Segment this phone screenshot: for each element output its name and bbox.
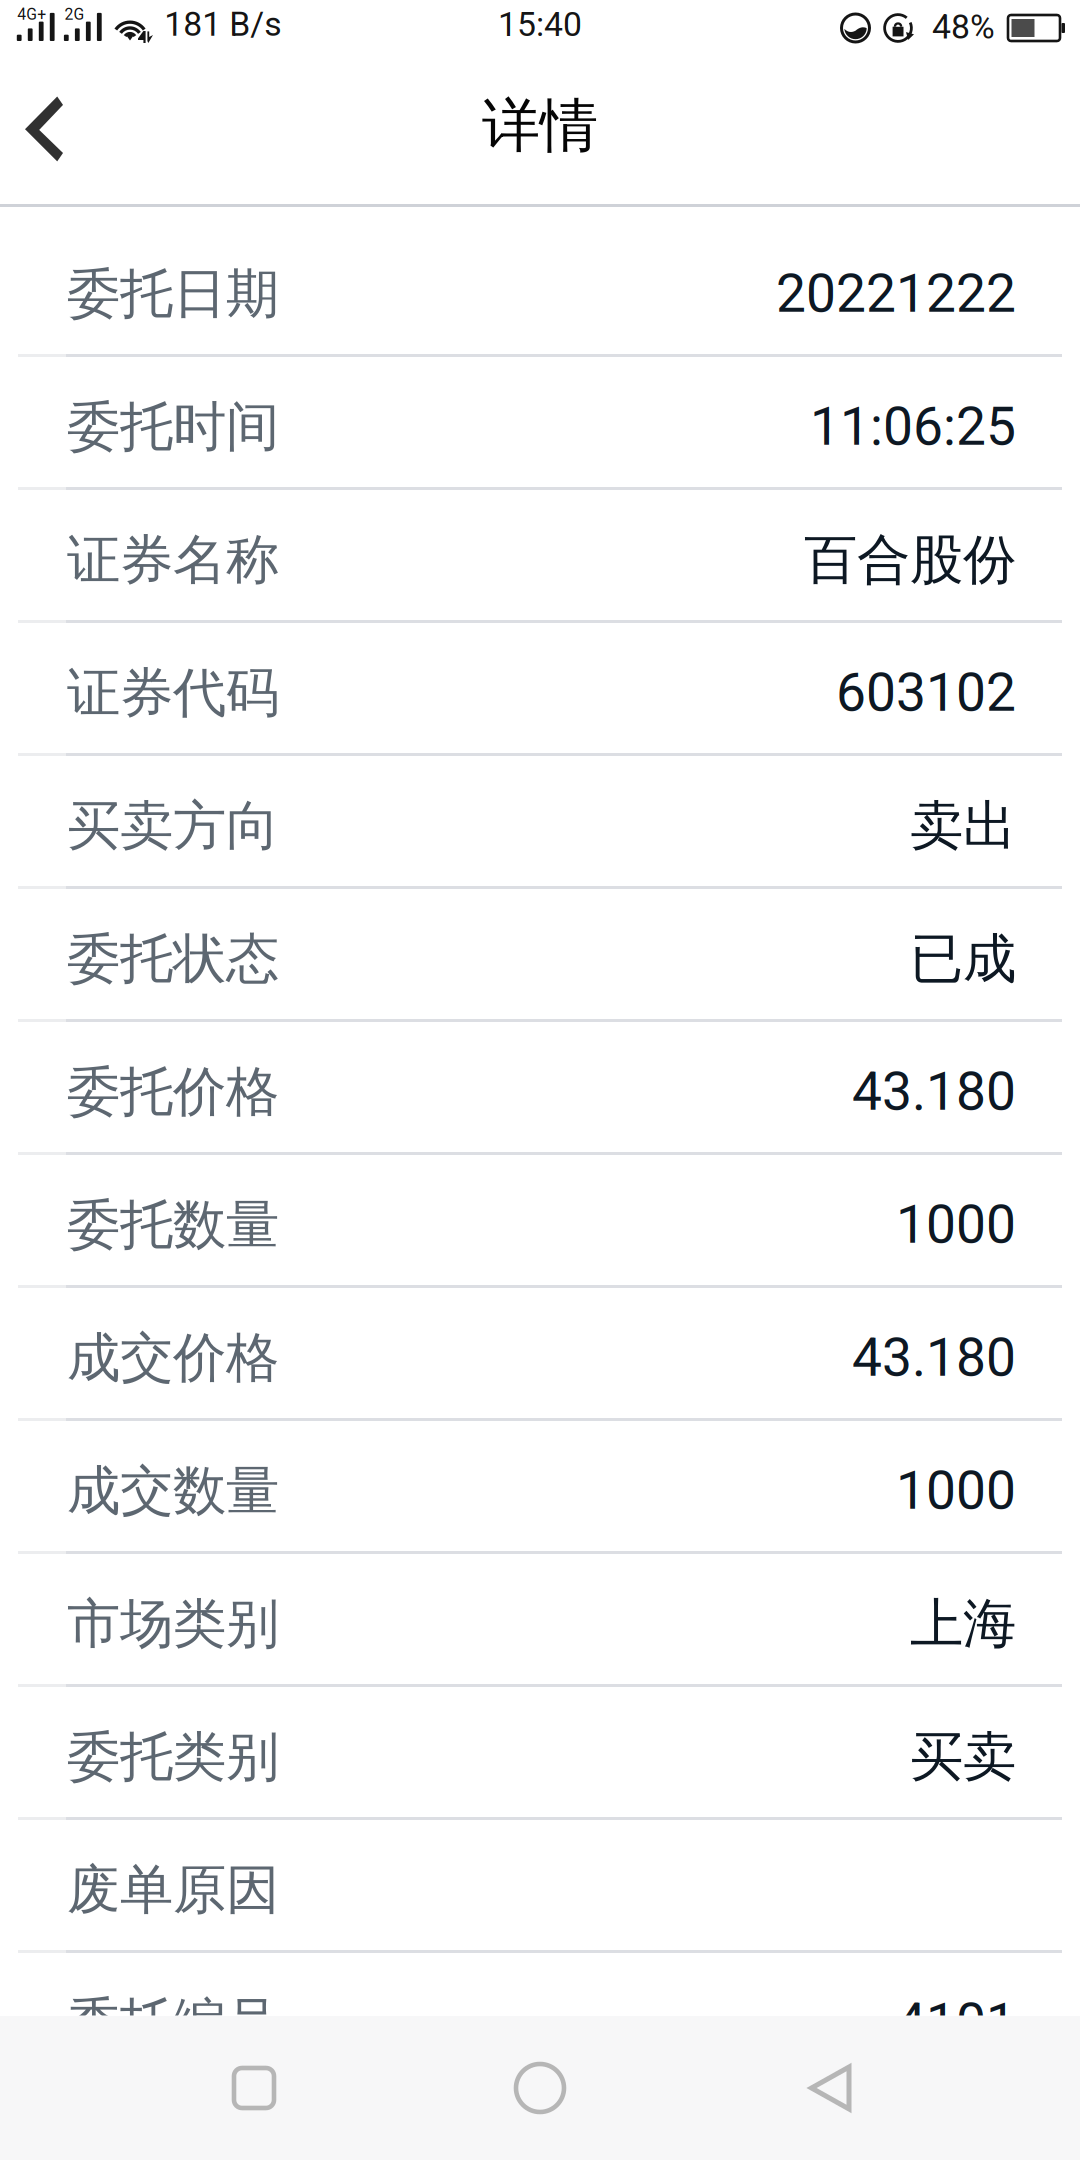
staticText: 委托类别 bbox=[67, 1723, 279, 1791]
button[interactable]: 废单原因 bbox=[0, 1820, 1080, 1953]
staticText: 1000 bbox=[896, 1459, 1016, 1522]
staticText: 603102 bbox=[836, 661, 1016, 724]
staticText: 181 B/s bbox=[164, 4, 281, 44]
staticText: 废单原因 bbox=[67, 1856, 279, 1924]
staticText: 成交数量 bbox=[67, 1457, 279, 1525]
staticText: 卖出 bbox=[910, 792, 1016, 860]
button[interactable]: 委托时间 bbox=[0, 357, 1080, 490]
staticText: 委托编号 bbox=[67, 1989, 279, 2057]
staticText: 已成 bbox=[910, 925, 1016, 993]
staticText: 11:06:25 bbox=[810, 395, 1016, 458]
button[interactable]: Back bbox=[740, 2016, 920, 2160]
button[interactable]: 委托状态 bbox=[0, 889, 1080, 1022]
button[interactable]: 证券名称 bbox=[0, 490, 1080, 623]
button[interactable]: 证券代码 bbox=[0, 623, 1080, 756]
staticText: 20221222 bbox=[776, 262, 1016, 325]
button[interactable]: 委托编号 bbox=[0, 1953, 1080, 2086]
button[interactable]: 市场类别 bbox=[0, 1554, 1080, 1687]
staticText: 证券名称 bbox=[67, 526, 279, 594]
staticText: 43.180 bbox=[852, 1060, 1016, 1123]
staticText: 委托价格 bbox=[67, 1058, 279, 1126]
button[interactable]: Back bbox=[0, 70, 88, 204]
button[interactable]: Home bbox=[450, 2016, 630, 2160]
staticText: 成交价格 bbox=[67, 1324, 279, 1392]
staticText: 上海 bbox=[910, 1590, 1016, 1658]
staticText: 48% bbox=[932, 7, 995, 47]
staticText: 委托时间 bbox=[67, 393, 279, 461]
staticText: 4101 bbox=[896, 1991, 1016, 2054]
staticText: 1000 bbox=[896, 1193, 1016, 1256]
staticText: 证券代码 bbox=[67, 659, 279, 727]
button[interactable]: 买卖方向 bbox=[0, 756, 1080, 889]
staticText: 4G+ bbox=[17, 5, 46, 23]
button[interactable]: 成交价格 bbox=[0, 1288, 1080, 1421]
staticText: 15:40 bbox=[498, 5, 582, 44]
staticText: 市场类别 bbox=[67, 1590, 279, 1658]
button[interactable]: Recent apps bbox=[164, 2016, 344, 2160]
staticText: 2G bbox=[64, 5, 84, 23]
button[interactable]: 委托日期 bbox=[0, 224, 1080, 357]
staticText: 买卖方向 bbox=[67, 792, 279, 860]
button[interactable]: 成交数量 bbox=[0, 1421, 1080, 1554]
button[interactable]: 委托价格 bbox=[0, 1022, 1080, 1155]
staticText: 委托日期 bbox=[67, 260, 279, 328]
staticText: 43.180 bbox=[852, 1326, 1016, 1389]
staticText: 详情 bbox=[482, 89, 598, 163]
button[interactable]: 委托类别 bbox=[0, 1687, 1080, 1820]
staticText: 委托状态 bbox=[67, 925, 279, 993]
staticText: 买卖 bbox=[910, 1723, 1016, 1791]
staticText: 委托数量 bbox=[67, 1191, 279, 1259]
staticText: 百合股份 bbox=[804, 526, 1016, 594]
button[interactable]: 委托数量 bbox=[0, 1155, 1080, 1288]
